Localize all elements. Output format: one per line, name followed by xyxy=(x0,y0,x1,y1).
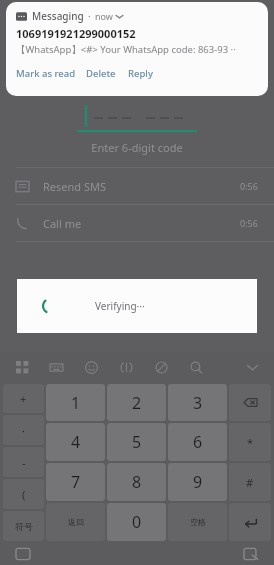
staticText: 3 xyxy=(193,392,203,414)
button[interactable]: 8 xyxy=(107,463,166,501)
button[interactable]: Messaging xyxy=(6,2,268,96)
button[interactable]: 5 xyxy=(107,423,166,461)
staticText: Mark as read xyxy=(16,67,76,80)
button[interactable]: Delete xyxy=(86,65,116,82)
button[interactable]: 符号 xyxy=(3,511,44,541)
staticText: 1 xyxy=(71,392,81,414)
staticText: now xyxy=(95,10,113,22)
button[interactable]: 4 xyxy=(46,423,105,461)
button[interactable]: 2 xyxy=(107,384,166,421)
button[interactable]: Reply xyxy=(128,65,153,82)
staticText: Enter 6-digit code xyxy=(91,140,183,155)
staticText: + xyxy=(20,391,27,406)
staticText: Messaging xyxy=(32,9,84,23)
button[interactable]: Collapse xyxy=(242,357,262,377)
staticText: 符号 xyxy=(15,521,33,532)
button[interactable]: # xyxy=(229,463,271,501)
staticText: 返回 xyxy=(68,517,84,527)
staticText: Verifying··· xyxy=(95,299,145,313)
button[interactable]: Apps xyxy=(12,357,32,377)
button[interactable]: 7 xyxy=(46,463,105,501)
button[interactable]: Enter xyxy=(229,503,271,541)
staticText: - xyxy=(22,455,26,470)
staticText: · xyxy=(88,9,91,23)
button[interactable]: 3 xyxy=(168,384,227,421)
button[interactable]: Mark as read xyxy=(16,65,76,82)
button[interactable]: ( xyxy=(3,479,44,509)
staticText: Resend SMS xyxy=(43,179,106,194)
staticText: Call me xyxy=(43,216,82,231)
button[interactable]: Search xyxy=(186,357,206,377)
button[interactable]: 6 xyxy=(168,423,227,461)
button[interactable]: 1 xyxy=(46,384,105,421)
staticText: 0:56 xyxy=(240,217,258,229)
staticText: 0 xyxy=(132,511,142,533)
button[interactable]: Emoji xyxy=(81,357,101,377)
other: Expand xyxy=(116,13,123,20)
button[interactable]: Sticker xyxy=(151,357,171,377)
staticText: 1069191921299000152 xyxy=(16,26,136,41)
staticText: # xyxy=(246,475,254,490)
button[interactable]: 返回 xyxy=(46,503,105,541)
button[interactable]: 9 xyxy=(168,463,227,501)
staticText: 空格 xyxy=(190,517,206,527)
button[interactable]: Keyboard xyxy=(46,357,66,377)
button[interactable]: + xyxy=(3,384,44,413)
staticText: 【WhatsApp】<#> Your WhatsApp code: 863-93… xyxy=(16,43,236,56)
staticText: 6 xyxy=(193,431,203,453)
button[interactable]: 0 xyxy=(107,503,166,541)
button[interactable]: * xyxy=(229,423,271,461)
staticText: 9 xyxy=(193,471,203,493)
button[interactable]: Translate xyxy=(116,357,136,377)
button[interactable]: Resend SMS xyxy=(0,168,274,204)
staticText: Reply xyxy=(128,67,153,80)
staticText: 5 xyxy=(132,431,142,453)
button[interactable]: Backspace xyxy=(229,384,271,421)
staticText: · xyxy=(22,423,25,438)
staticText: Delete xyxy=(86,67,116,80)
button[interactable]: Call me xyxy=(0,205,274,241)
staticText: 7 xyxy=(71,471,81,493)
button[interactable]: Recents xyxy=(16,547,30,561)
staticText: 4 xyxy=(71,431,81,453)
button[interactable]: 空格 xyxy=(168,503,227,541)
staticText: * xyxy=(247,435,254,450)
staticText: 2 xyxy=(132,392,142,414)
staticText: ( xyxy=(22,487,26,502)
staticText: 8 xyxy=(132,471,142,493)
staticText: 0:56 xyxy=(240,180,258,192)
button[interactable]: Back xyxy=(244,547,258,561)
